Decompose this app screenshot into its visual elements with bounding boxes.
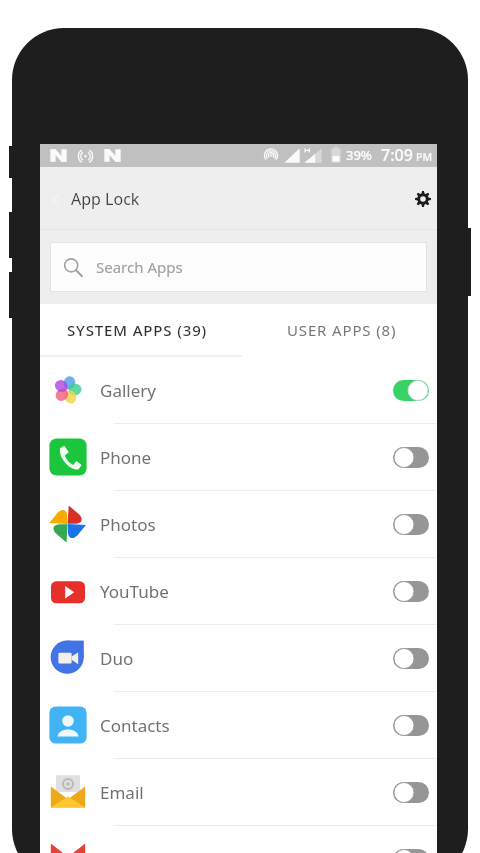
button[interactable]: YouTube <box>40 558 437 624</box>
button[interactable]: Gallery <box>40 357 437 423</box>
staticText: YouTube <box>100 580 169 603</box>
staticText: SYSTEM APPS (39) <box>67 320 208 340</box>
staticText: 39% <box>346 146 372 164</box>
staticText: Gallery <box>100 379 156 402</box>
staticText: USER APPS (8) <box>287 320 397 340</box>
staticText: App Lock <box>71 188 140 210</box>
staticText: Search Apps <box>96 257 183 277</box>
button[interactable]: Duo <box>40 625 437 691</box>
staticText: Email <box>100 781 144 804</box>
staticText: PM <box>416 150 433 164</box>
staticText: Duo <box>100 647 134 670</box>
button[interactable]: Phone <box>40 424 437 490</box>
button[interactable]: Photos <box>40 491 437 557</box>
button[interactable]: Contacts <box>40 692 437 758</box>
button[interactable]: USER APPS (8) <box>238 304 437 355</box>
button[interactable]: Search Apps <box>50 242 427 292</box>
button[interactable]: Email <box>40 759 437 825</box>
staticText: 7:09 <box>381 144 413 166</box>
staticText: Photos <box>100 513 156 536</box>
staticText: Phone <box>100 446 152 469</box>
button[interactable]: SYSTEM APPS (39) <box>40 304 238 355</box>
button[interactable]: Settings <box>409 185 437 213</box>
staticText: Contacts <box>100 714 170 737</box>
button[interactable]: Gmail <box>40 826 437 853</box>
